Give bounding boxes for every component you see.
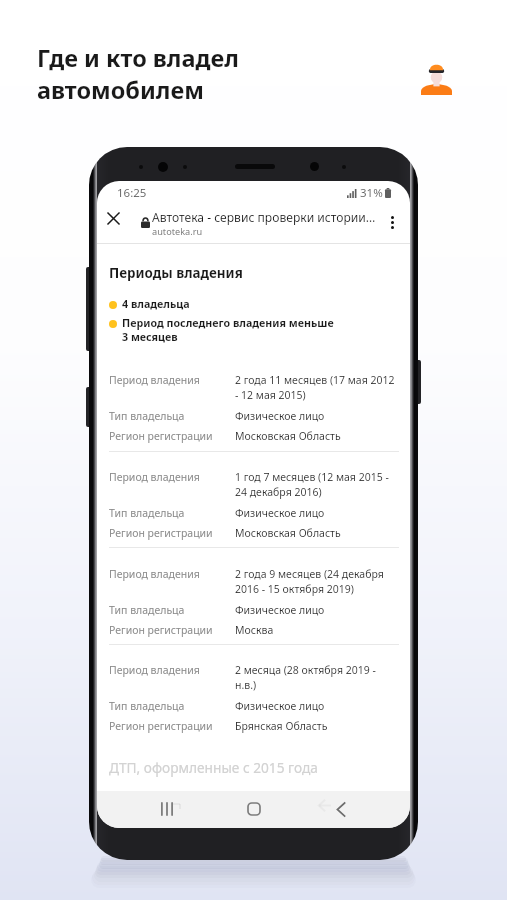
staticText: Период владения	[109, 567, 200, 581]
staticText: Брянская Область	[235, 719, 328, 733]
staticText: Период владения	[109, 373, 200, 387]
staticText: Физическое лицо	[235, 409, 325, 423]
other: Car owner	[421, 63, 452, 95]
button[interactable]: More options	[381, 211, 403, 233]
staticText: Московская Область	[235, 429, 341, 443]
staticText: Регион регистрации	[109, 719, 213, 733]
staticText: autoteka.ru	[152, 225, 203, 238]
staticText: ДТП, оформленные с 2015 года	[109, 758, 318, 777]
staticText: Тип владельца	[109, 506, 185, 520]
staticText: Тип владельца	[109, 409, 185, 423]
button[interactable]: Home	[239, 794, 269, 824]
staticText: Регион регистрации	[109, 526, 213, 540]
staticText: Автотека - сервис проверки истории…	[152, 209, 376, 225]
staticText: 2 года 11 месяцев (17 мая 2012 - 12 мая …	[235, 373, 395, 402]
button[interactable]: Close tab	[101, 206, 125, 230]
staticText: 1 год 7 месяцев (12 мая 2015 - 24 декабр…	[235, 470, 389, 499]
staticText: Период владения	[109, 470, 200, 484]
staticText: Где и кто владел	[37, 42, 239, 74]
staticText: Период владения	[109, 663, 200, 677]
staticText: Периоды владения	[109, 264, 243, 282]
staticText: Регион регистрации	[109, 429, 213, 443]
staticText: автомобилем	[37, 74, 204, 106]
staticText: 2 года 9 месяцев (24 декабря 2016 - 15 о…	[235, 567, 384, 596]
staticText: Физическое лицо	[235, 506, 325, 520]
staticText: Тип владельца	[109, 699, 185, 713]
staticText: Москва	[235, 623, 274, 637]
button[interactable]: Recent apps	[152, 794, 182, 824]
staticText: Московская Область	[235, 526, 341, 540]
staticText: Физическое лицо	[235, 699, 325, 713]
staticText: Период последнего владения меньше 3 меся…	[122, 316, 334, 344]
button[interactable]: Back	[326, 794, 356, 824]
staticText: Регион регистрации	[109, 623, 213, 637]
staticText: 16:25	[117, 185, 147, 201]
staticText: Тип владельца	[109, 603, 185, 617]
staticText: 31%	[360, 185, 383, 201]
staticText: 4 владельца	[122, 297, 190, 312]
staticText: Физическое лицо	[235, 603, 325, 617]
staticText: 2 месяца (28 октября 2019 - н.в.)	[235, 663, 376, 692]
